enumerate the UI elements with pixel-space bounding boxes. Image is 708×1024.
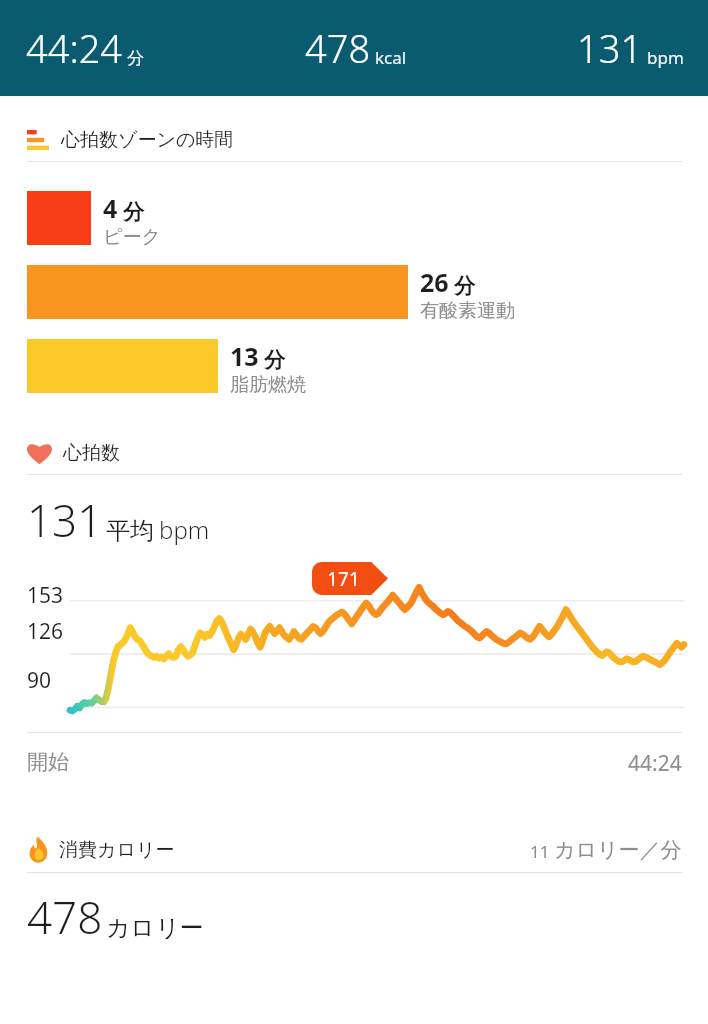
staticText: 13	[230, 339, 259, 373]
button[interactable]: 消費カロリー	[27, 836, 682, 863]
staticText: カロリー	[106, 913, 204, 943]
staticText: 心拍数ゾーンの時間	[61, 128, 234, 152]
staticText: 478	[27, 887, 103, 947]
staticText: 心拍数	[63, 441, 120, 465]
staticText: 44:24	[628, 749, 682, 778]
staticText: 153	[27, 581, 64, 610]
staticText: 有酸素運動	[420, 299, 515, 323]
button[interactable]: Peak heart rate 171	[312, 562, 388, 595]
staticText: 126	[27, 617, 64, 646]
staticText: bpm	[647, 46, 684, 69]
staticText: 平均	[106, 516, 154, 546]
staticText: 消費カロリー	[59, 838, 175, 862]
staticText: kcal	[375, 46, 407, 69]
button[interactable]: 心拍数	[27, 441, 708, 465]
staticText: 171	[327, 566, 360, 592]
staticText: 分	[123, 199, 144, 225]
staticText: 分	[264, 347, 285, 373]
staticText: カロリー／分	[554, 837, 682, 863]
staticText: 11	[530, 840, 550, 863]
staticText: 131	[577, 22, 643, 74]
staticText: 131	[27, 490, 103, 550]
staticText: 分	[127, 48, 144, 69]
staticText: 4	[103, 191, 118, 225]
staticText: 44:24	[26, 22, 123, 74]
button[interactable]: 26	[0, 265, 708, 323]
staticText: 開始	[27, 749, 69, 775]
staticText: bpm	[159, 513, 210, 546]
staticText: 478	[305, 22, 371, 74]
button[interactable]: 心拍数ゾーンの時間	[27, 128, 708, 152]
button[interactable]: 44:24	[0, 0, 708, 96]
staticText: 26	[420, 265, 449, 299]
button[interactable]: 4	[0, 191, 708, 249]
staticText: ピーク	[103, 225, 161, 249]
staticText: 脂肪燃焼	[230, 373, 306, 397]
button[interactable]: 13	[0, 339, 708, 397]
staticText: 90	[27, 666, 52, 695]
staticText: 分	[454, 273, 475, 299]
